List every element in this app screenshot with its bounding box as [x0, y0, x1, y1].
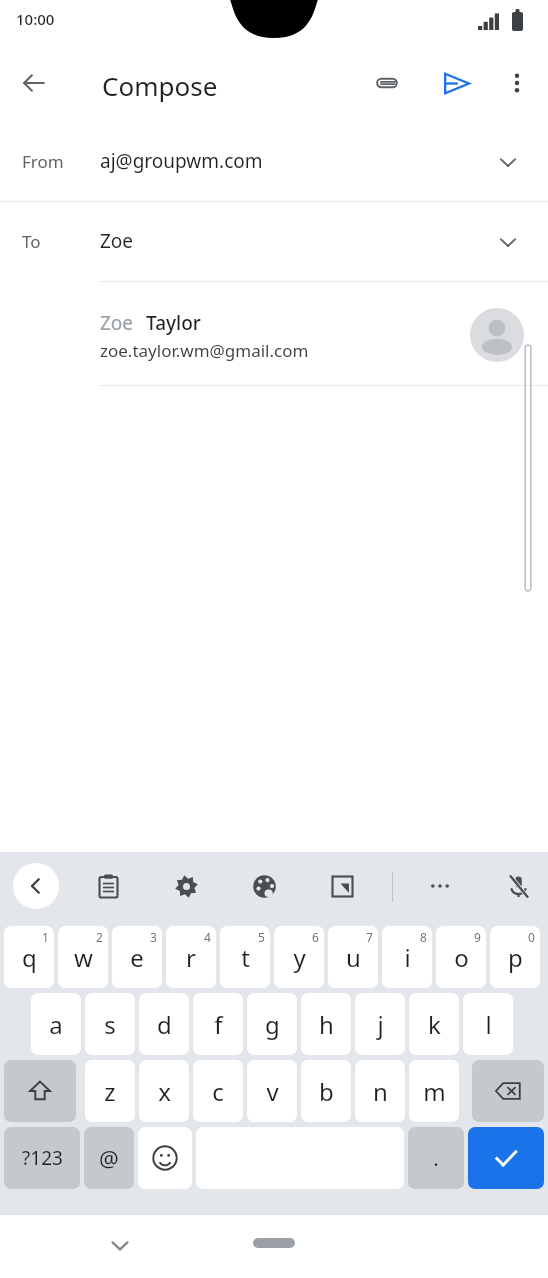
button[interactable]: y — [274, 926, 324, 988]
button[interactable]: q — [4, 926, 54, 988]
staticText: g — [265, 1008, 280, 1041]
staticText: 0 — [528, 929, 535, 945]
staticText: Zoe — [100, 310, 139, 336]
staticText: Zoe — [100, 228, 134, 254]
button[interactable]: e — [112, 926, 162, 988]
staticText: From — [22, 150, 64, 173]
button[interactable]: d — [139, 993, 189, 1055]
staticText: k — [428, 1008, 441, 1041]
button[interactable]: m — [409, 1060, 459, 1122]
staticText: . — [433, 1145, 439, 1172]
button[interactable]: From — [0, 122, 548, 201]
staticText: p — [508, 941, 523, 974]
staticText: i — [404, 941, 411, 974]
button[interactable]: More options — [495, 61, 539, 105]
staticText: Taylor — [146, 310, 201, 336]
staticText: r — [186, 941, 196, 974]
button[interactable]: Themes — [246, 863, 282, 909]
button[interactable]: Enter — [468, 1127, 544, 1189]
button[interactable]: n — [355, 1060, 405, 1122]
button[interactable]: To — [0, 202, 548, 281]
staticText: c — [212, 1075, 224, 1108]
staticText: x — [158, 1075, 171, 1108]
button[interactable]: t — [220, 926, 270, 988]
button[interactable]: Expand from — [486, 140, 530, 184]
staticText: 2 — [96, 929, 103, 945]
button[interactable]: k — [409, 993, 459, 1055]
staticText: zoe.taylor.wm@gmail.com — [100, 339, 309, 362]
staticText: z — [104, 1075, 116, 1108]
staticText: 4 — [204, 929, 211, 945]
staticText: u — [346, 941, 361, 974]
staticText: d — [157, 1008, 172, 1041]
staticText: 6 — [312, 929, 319, 945]
button[interactable]: Zoe — [0, 282, 548, 385]
button[interactable]: Back — [12, 61, 56, 105]
staticText: j — [377, 1008, 384, 1041]
button[interactable]: Send — [434, 61, 478, 105]
staticText: h — [319, 1008, 334, 1041]
button[interactable]: . — [408, 1127, 464, 1189]
button[interactable]: Home — [253, 1238, 295, 1248]
button[interactable]: g — [247, 993, 297, 1055]
staticText: 8 — [420, 929, 427, 945]
button[interactable]: a — [31, 993, 81, 1055]
staticText: m — [423, 1075, 446, 1108]
button[interactable]: Backspace — [472, 1060, 544, 1122]
button[interactable]: Expand to — [486, 220, 530, 264]
button[interactable]: x — [139, 1060, 189, 1122]
button[interactable]: Previous — [13, 863, 59, 909]
staticText: e — [130, 941, 144, 974]
button[interactable]: p — [490, 926, 540, 988]
staticText: 9 — [474, 929, 481, 945]
staticText: ?123 — [22, 1145, 63, 1171]
staticText: 3 — [150, 929, 157, 945]
button[interactable]: Settings — [168, 863, 204, 909]
staticText: @ — [99, 1143, 119, 1173]
button[interactable]: Hide keyboard — [98, 1223, 142, 1267]
button[interactable]: Shift — [4, 1060, 76, 1122]
button[interactable]: j — [355, 993, 405, 1055]
staticText: q — [22, 941, 37, 974]
staticText: a — [49, 1008, 63, 1041]
staticText: o — [454, 941, 469, 974]
button[interactable]: Clipboard — [90, 863, 126, 909]
staticText: 10:00 — [16, 9, 55, 29]
button[interactable]: Stickers — [324, 863, 360, 909]
button[interactable]: ?123 — [4, 1127, 80, 1189]
staticText: l — [485, 1008, 492, 1041]
button[interactable]: v — [247, 1060, 297, 1122]
button[interactable]: f — [193, 993, 243, 1055]
staticText: w — [74, 941, 93, 974]
button[interactable]: More — [422, 863, 458, 909]
button[interactable]: Emoji — [138, 1127, 192, 1189]
button[interactable]: r — [166, 926, 216, 988]
staticText: v — [266, 1075, 279, 1108]
button[interactable]: @ — [84, 1127, 134, 1189]
button[interactable]: l — [463, 993, 513, 1055]
staticText: Compose — [102, 68, 218, 103]
button[interactable]: o — [436, 926, 486, 988]
staticText: y — [293, 941, 306, 974]
staticText: To — [22, 230, 41, 253]
staticText: f — [214, 1008, 223, 1041]
button[interactable]: s — [85, 993, 135, 1055]
staticText: 1 — [42, 929, 49, 945]
button[interactable]: u — [328, 926, 378, 988]
staticText: aj@groupwm.com — [100, 148, 263, 174]
staticText: s — [104, 1008, 116, 1041]
button[interactable]: w — [58, 926, 108, 988]
staticText: n — [373, 1075, 388, 1108]
staticText: t — [241, 941, 250, 974]
staticText: 7 — [366, 929, 373, 945]
button[interactable]: i — [382, 926, 432, 988]
staticText: 5 — [258, 929, 265, 945]
button[interactable]: Voice input off — [500, 863, 536, 909]
button[interactable]: c — [193, 1060, 243, 1122]
button[interactable]: z — [85, 1060, 135, 1122]
button[interactable]: b — [301, 1060, 351, 1122]
staticText: b — [319, 1075, 334, 1108]
button[interactable]: Attach file — [365, 61, 409, 105]
button[interactable]: h — [301, 993, 351, 1055]
